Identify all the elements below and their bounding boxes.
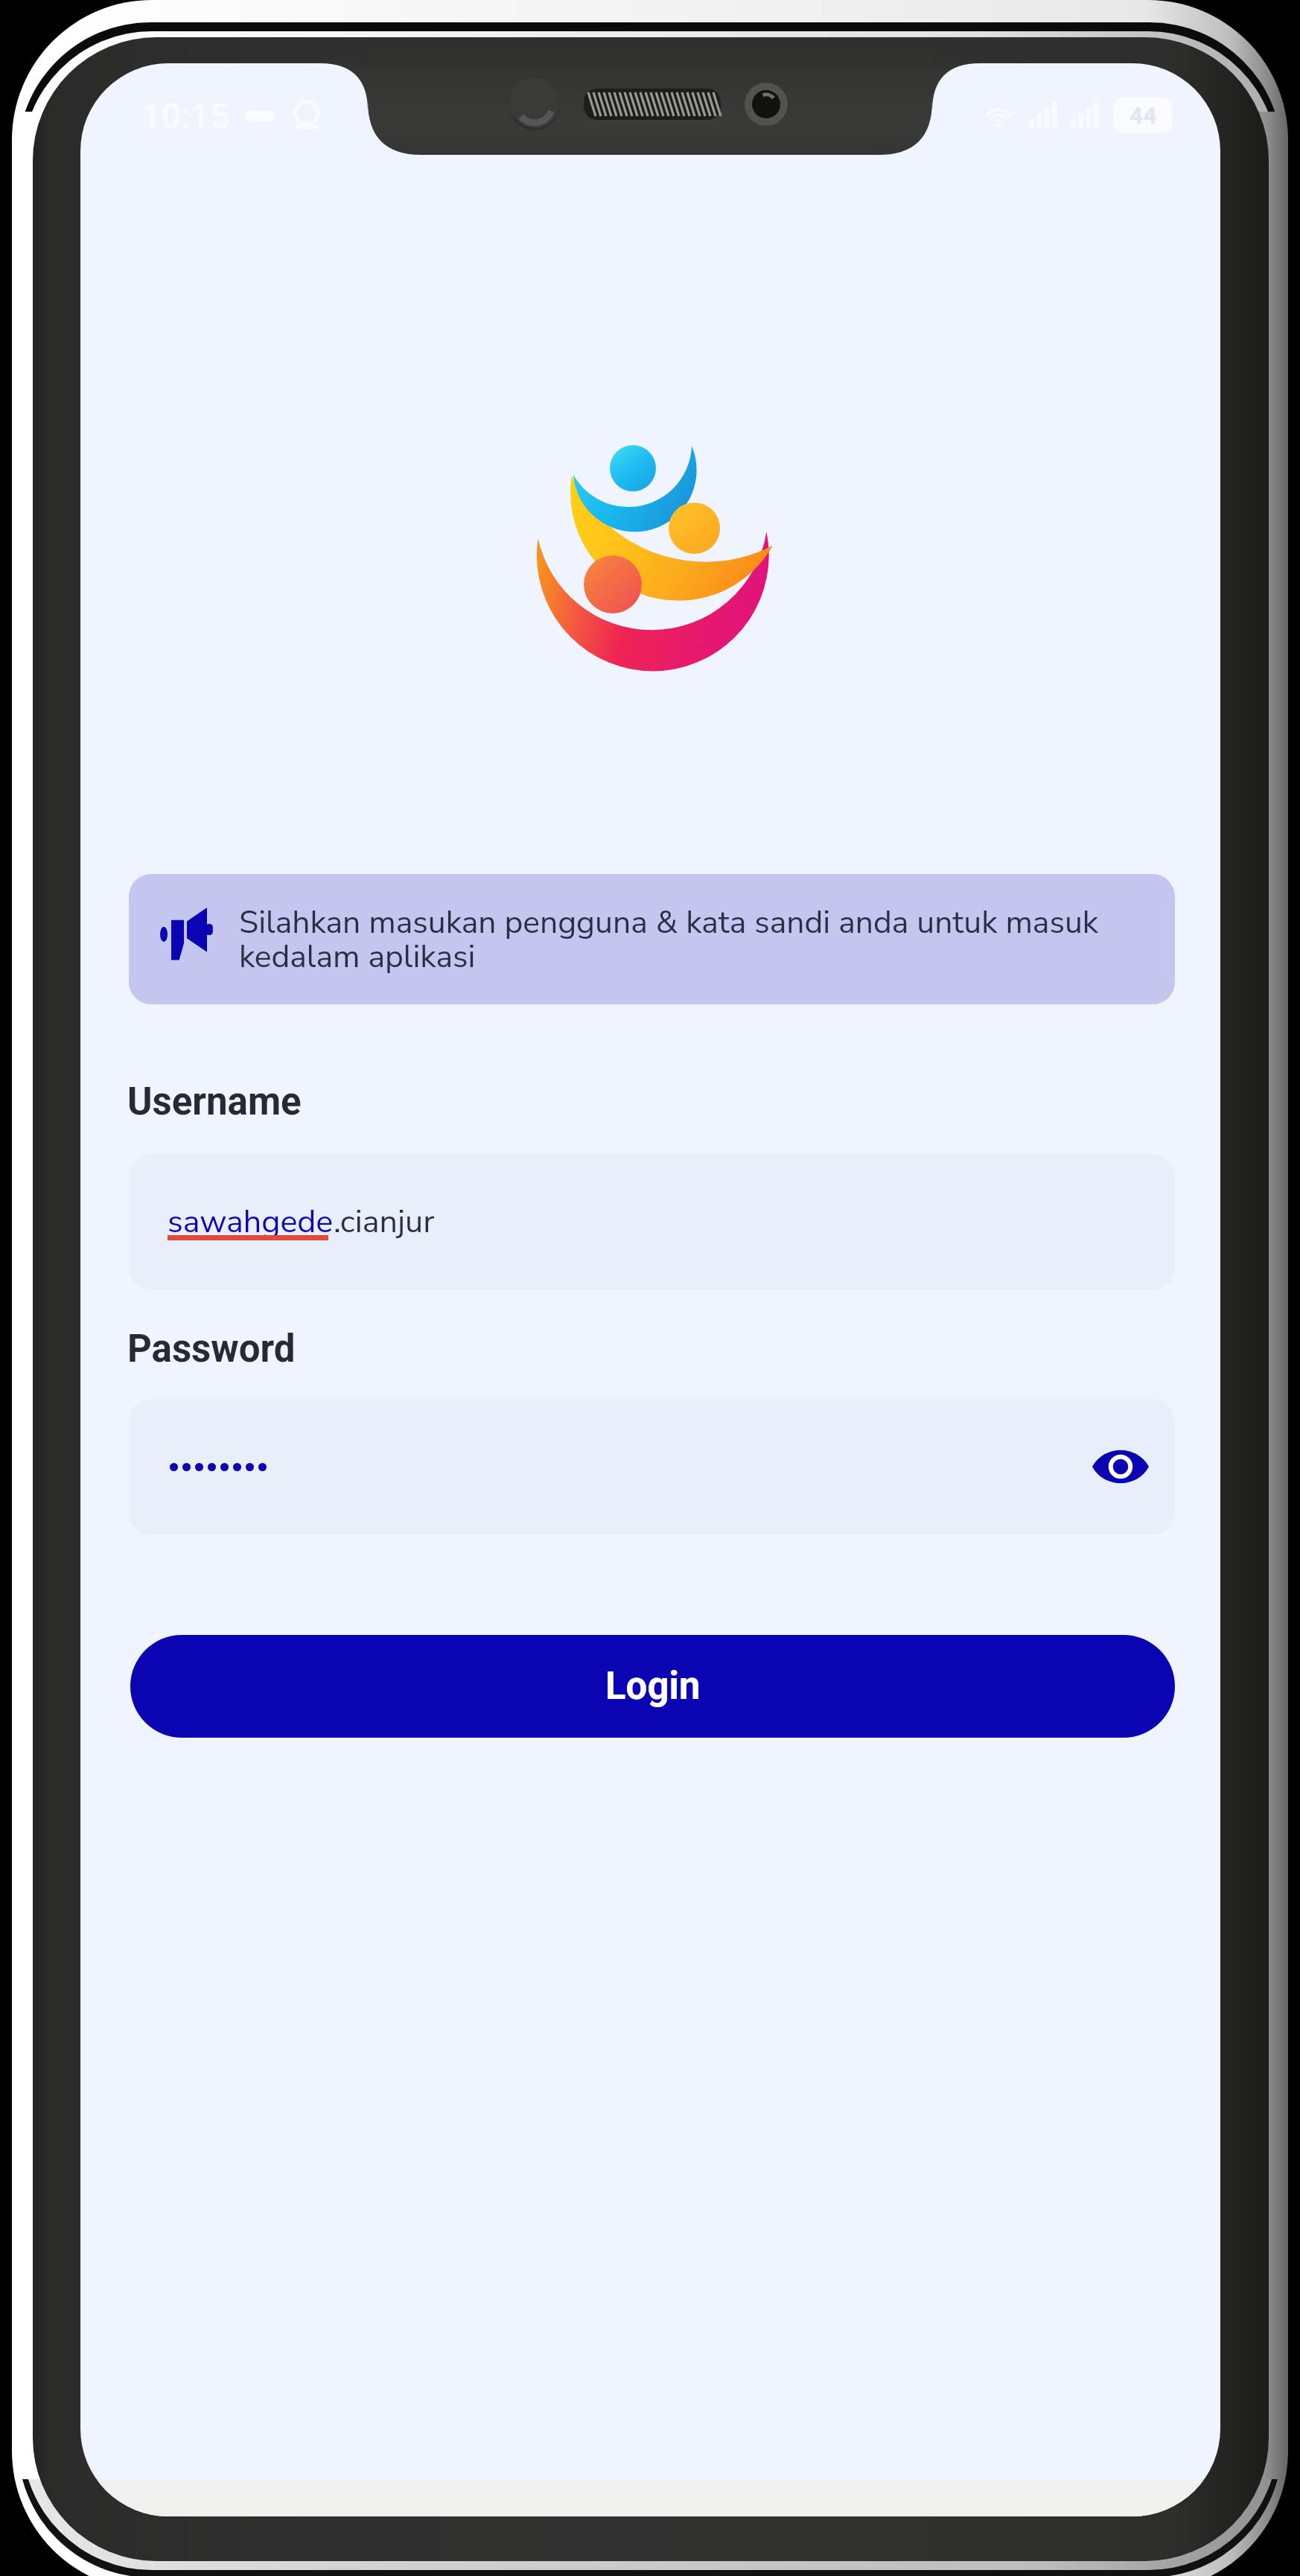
button[interactable]: sawahgede bbox=[129, 1154, 1175, 1289]
staticText: sawahgede bbox=[168, 1200, 334, 1244]
button[interactable]: Show password bbox=[129, 1399, 1175, 1534]
staticText: .cianjur bbox=[334, 1200, 435, 1244]
staticText: 44 bbox=[1129, 101, 1157, 130]
button[interactable]: Login bbox=[130, 1635, 1175, 1738]
staticText: Silahkan masukan pengguna & kata sandi a… bbox=[239, 901, 1175, 978]
button[interactable]: Show password bbox=[1085, 1431, 1156, 1502]
staticText: 10:15 bbox=[141, 95, 231, 136]
button[interactable]: Silahkan masukan pengguna & kata sandi a… bbox=[129, 874, 1175, 1004]
staticText: Username bbox=[127, 1080, 302, 1124]
staticText: Password bbox=[127, 1327, 296, 1371]
staticText: Login bbox=[605, 1664, 701, 1709]
